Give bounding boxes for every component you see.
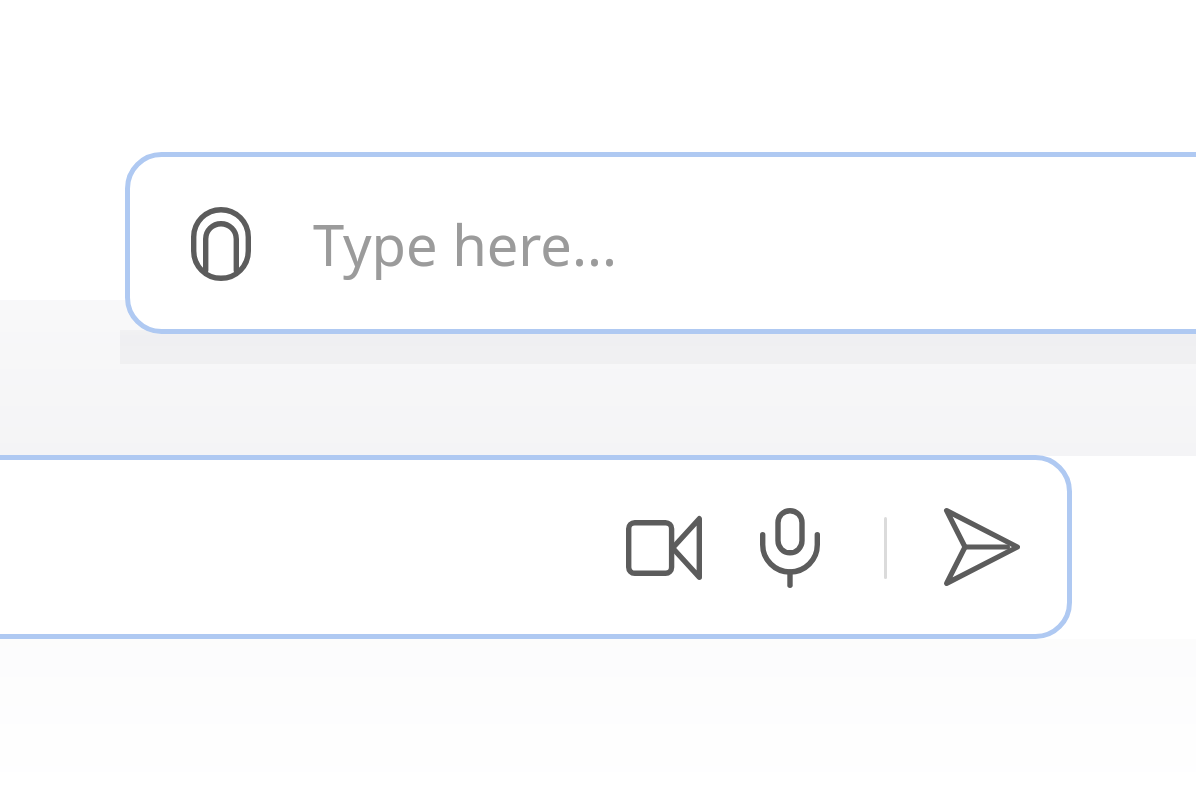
button[interactable]: Type here... [313, 205, 793, 283]
staticText: Type here... [313, 206, 617, 282]
button[interactable]: Voice message [760, 508, 820, 588]
button[interactable]: Attach file [190, 206, 252, 282]
button[interactable] [0, 455, 1072, 639]
button[interactable]: Video call [626, 516, 702, 580]
button[interactable] [125, 152, 1196, 334]
button[interactable]: Send [942, 508, 1020, 586]
